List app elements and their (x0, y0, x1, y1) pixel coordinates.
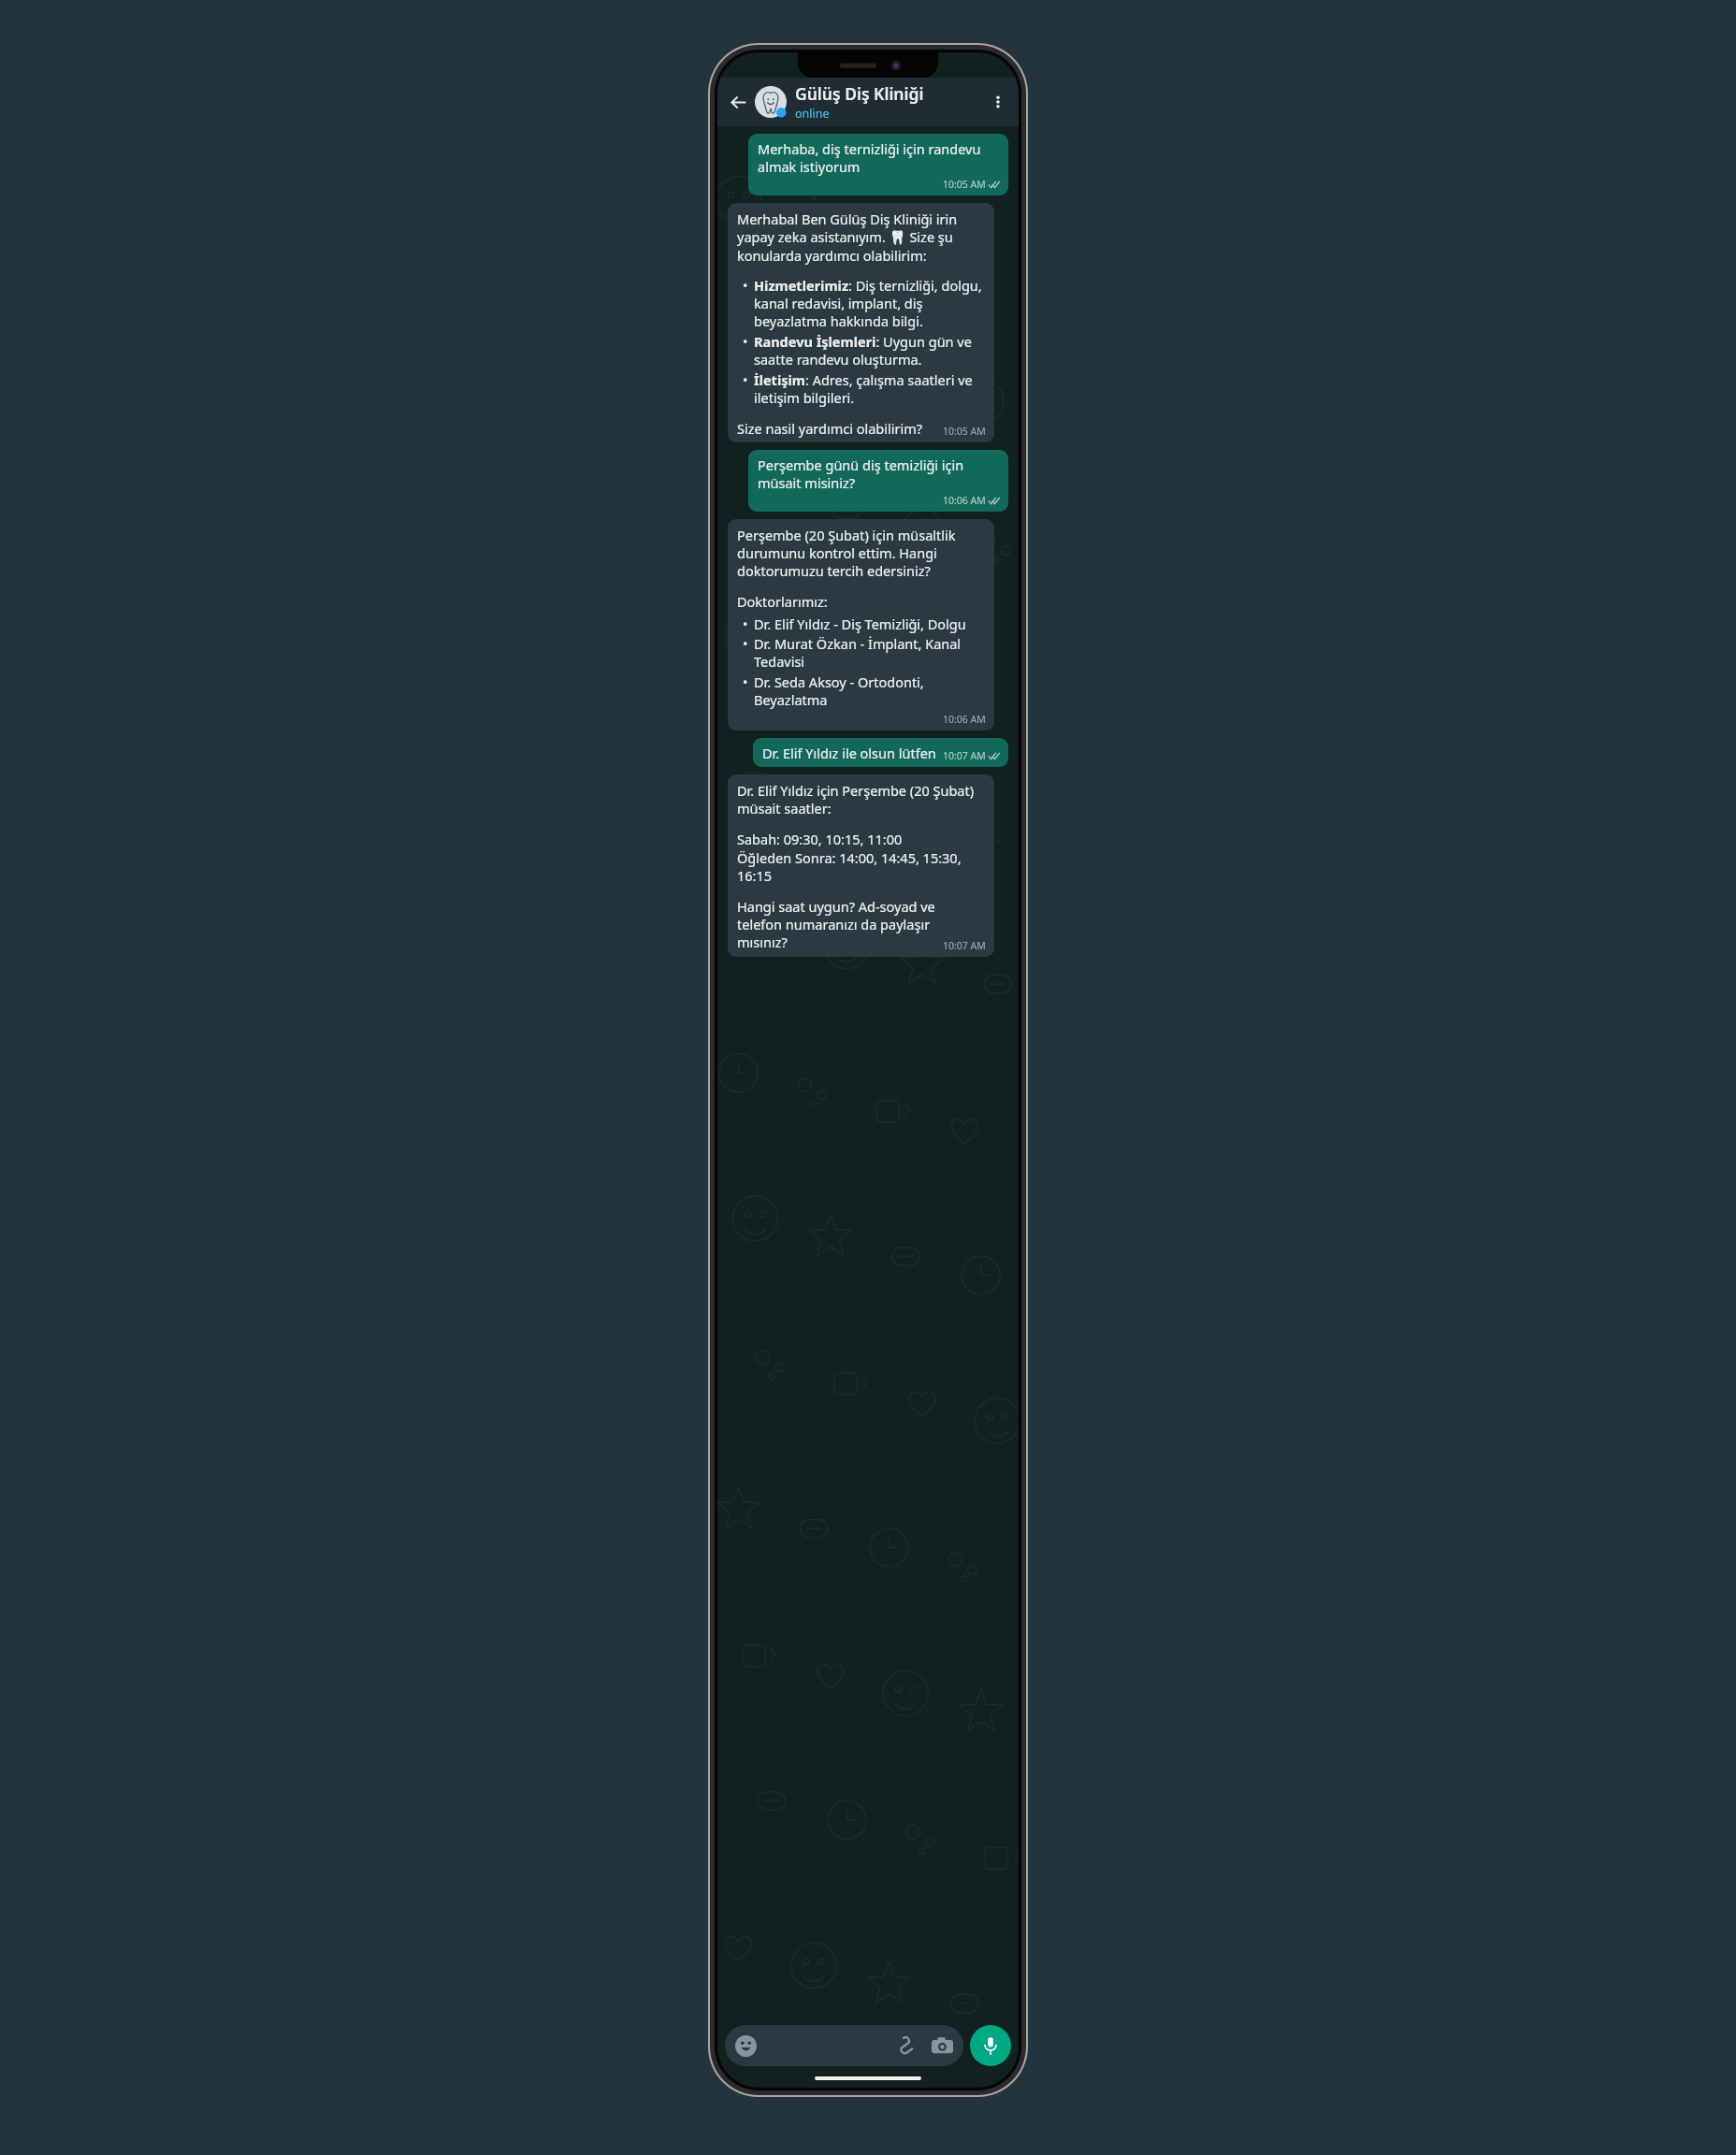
staticText: Dr. Seda Aksoy - Ortodonti, Beyazlatma (754, 673, 986, 710)
button[interactable]: Dr. Elif Yıldız için Perşembe (20 Şubat)… (728, 774, 994, 957)
staticText: 10:07 AM (943, 749, 986, 762)
staticText: • (743, 332, 748, 351)
staticText: Dr. Elif Yıldız - Diş Temizliği, Dolgu (754, 615, 966, 633)
staticText: • (743, 673, 748, 691)
staticText: • (743, 370, 748, 389)
staticText: 10:06 AM (943, 494, 986, 507)
staticText: Randevu İşlemleri: Uygun gün ve saatte r… (754, 332, 986, 369)
staticText: Dr. Murat Özkan - İmplant, Kanal Tedavis… (754, 634, 986, 672)
staticText: • (743, 276, 748, 295)
button[interactable]: Back (723, 87, 753, 117)
staticText: Doktorlarımız: (737, 592, 828, 611)
staticText: • (743, 615, 748, 633)
button[interactable]: Dr. Elif Yıldız ile olsun lütfen (753, 738, 1008, 767)
button[interactable]: Perşembe (20 Şubat) için müsaltlik durum… (728, 519, 994, 730)
button[interactable]: Emoji (725, 2025, 963, 2066)
button[interactable]: More options (983, 87, 1013, 117)
staticText: Gülüş Diş Kliniği (795, 82, 924, 105)
staticText: Hizmetlerimiz: Diş ternizliği, dolgu, ka… (754, 276, 986, 331)
staticText: Size nasil yardımci olabilirim? (737, 419, 935, 438)
staticText: online (795, 106, 830, 122)
staticText: Perşembe günü diş temizliği için müsait … (758, 456, 1001, 492)
staticText: Öğleden Sonra: 14:00, 14:45, 15:30, 16:1… (737, 848, 986, 886)
button[interactable]: Perşembe günü diş temizliği için müsait … (748, 450, 1008, 512)
staticText: Merhaba, diş ternizliği için randevu alm… (758, 139, 1001, 176)
staticText: Dr. Elif Yıldız için Perşembe (20 Şubat)… (737, 781, 986, 818)
staticText: Hangi saat uygun? Ad-soyad ve telefon nu… (737, 897, 937, 952)
staticText: İletişim: Adres, çalışma saatleri ve ile… (754, 370, 986, 408)
staticText: 10:07 AM (943, 939, 986, 952)
button[interactable]: Attach (894, 2035, 916, 2057)
staticText: • (743, 634, 748, 653)
button[interactable]: Emoji (735, 2035, 757, 2057)
button[interactable]: Voice message (970, 2025, 1011, 2066)
staticText: Merhabal Ben Gülüş Diş Kliniği irin yapa… (737, 210, 986, 266)
button[interactable]: Merhabal Ben Gülüş Diş Kliniği irin yapa… (728, 203, 994, 442)
button[interactable]: Gülüş Diş Kliniği (795, 82, 983, 122)
staticText: Perşembe (20 Şubat) için müsaltlik durum… (737, 526, 986, 581)
staticText: 10:05 AM (943, 425, 986, 438)
staticText: Sabah: 09:30, 10:15, 11:00 (737, 830, 903, 848)
staticText: 10:06 AM (943, 713, 986, 726)
staticText: 10:05 AM (943, 178, 986, 191)
staticText: Dr. Elif Yıldız ile olsun lütfen (762, 744, 936, 762)
button[interactable]: Merhaba, diş ternizliği için randevu alm… (748, 134, 1008, 195)
button[interactable]: Camera (932, 2035, 953, 2057)
